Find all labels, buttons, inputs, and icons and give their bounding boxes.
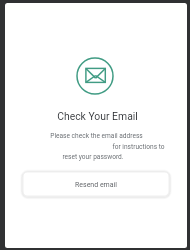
- staticText: Check Your Email: [57, 110, 138, 122]
- staticText: reset your password.: [62, 153, 124, 161]
- staticText: Please check the email address: [50, 132, 143, 140]
- other: Email sent: [76, 57, 114, 95]
- staticText: Resend email: [75, 181, 117, 189]
- button[interactable]: Resend email: [20, 169, 172, 199]
- staticText: for instructions to: [112, 143, 165, 151]
